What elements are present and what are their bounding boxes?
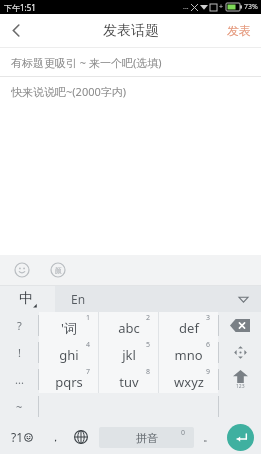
- button[interactable]: Shift to numbers: [219, 366, 261, 393]
- staticText: 中: [19, 290, 33, 308]
- button[interactable]: Move cursor: [219, 339, 261, 366]
- staticText: 7: [86, 367, 91, 377]
- staticText: tuv: [119, 373, 139, 391]
- button[interactable]: En: [55, 286, 225, 312]
- staticText: 发表话题: [103, 22, 159, 40]
- staticText: ?: [17, 318, 22, 333]
- button[interactable]: 中: [0, 286, 55, 312]
- staticText: ，: [50, 430, 61, 444]
- staticText: 下午1:51: [4, 2, 36, 13]
- button[interactable]: Kaomoji: [49, 261, 67, 279]
- button[interactable]: 3: [159, 312, 218, 339]
- button[interactable]: Enter: [219, 420, 261, 454]
- staticText: En: [71, 291, 86, 307]
- button[interactable]: 快来说说吧~(2000字内): [0, 77, 261, 105]
- button[interactable]: Back: [0, 14, 33, 47]
- button[interactable]: 9: [159, 366, 218, 393]
- staticText: 拼音: [136, 431, 158, 445]
- staticText: 快来说说吧~(2000字内): [11, 84, 127, 99]
- staticText: wxyz: [174, 373, 204, 391]
- button[interactable]: 有标题更吸引 ~ 来一个吧(选填): [0, 48, 261, 76]
- button[interactable]: 5: [99, 339, 158, 366]
- staticText: 6: [206, 340, 211, 350]
- button[interactable]: ...: [0, 366, 38, 393]
- staticText: ...: [183, 2, 189, 12]
- staticText: 。: [203, 430, 214, 444]
- staticText: mno: [174, 346, 203, 364]
- staticText: 3: [206, 313, 211, 323]
- button[interactable]: 2: [99, 312, 158, 339]
- staticText: ...: [15, 372, 24, 387]
- staticText: abc: [118, 319, 140, 337]
- staticText: 5: [146, 340, 151, 350]
- staticText: 发表: [227, 23, 251, 38]
- staticText: 123: [236, 383, 245, 390]
- staticText: 73%: [244, 2, 258, 12]
- staticText: !: [18, 345, 21, 360]
- staticText: ~: [16, 399, 23, 414]
- staticText: 0: [181, 428, 186, 438]
- button[interactable]: ?: [0, 312, 38, 339]
- button[interactable]: !: [0, 339, 38, 366]
- staticText: jkl: [122, 346, 136, 364]
- staticText: 8: [146, 367, 151, 377]
- button[interactable]: Emoji: [13, 261, 31, 279]
- staticText: pqrs: [55, 373, 83, 391]
- staticText: ?1: [11, 429, 24, 445]
- button[interactable]: 7: [39, 366, 98, 393]
- staticText: 颜: [55, 266, 62, 275]
- button[interactable]: Switch language: [66, 420, 96, 454]
- button[interactable]: 拼音: [99, 427, 194, 448]
- button[interactable]: 8: [99, 366, 158, 393]
- staticText: 2: [146, 313, 151, 323]
- button[interactable]: ?1: [0, 420, 44, 454]
- button[interactable]: 1: [39, 312, 98, 339]
- staticText: 有标题更吸引 ~ 来一个吧(选填): [11, 55, 162, 70]
- button[interactable]: 。: [197, 420, 219, 454]
- button[interactable]: 6: [159, 339, 218, 366]
- staticText: 9: [206, 367, 211, 377]
- staticText: def: [179, 319, 199, 337]
- button[interactable]: Backspace: [219, 312, 261, 339]
- button[interactable]: Collapse keyboard: [225, 286, 261, 312]
- staticText: 4: [86, 340, 91, 350]
- button[interactable]: ，: [44, 420, 66, 454]
- staticText: '词: [61, 319, 77, 337]
- button[interactable]: 4: [39, 339, 98, 366]
- staticText: 1: [86, 313, 91, 323]
- staticText: +: [219, 2, 224, 12]
- button[interactable]: ~: [0, 393, 38, 420]
- button[interactable]: 发表: [227, 23, 251, 38]
- staticText: ◢: [33, 302, 37, 308]
- staticText: ghi: [59, 346, 79, 364]
